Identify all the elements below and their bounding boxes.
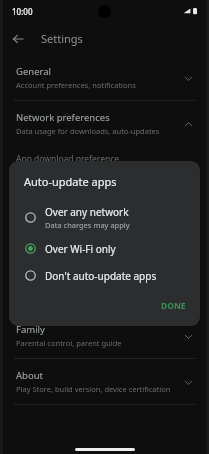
- staticText: Over any network: [45, 205, 129, 219]
- staticText: Network preferences: [16, 111, 110, 124]
- staticText: Settings: [41, 31, 83, 46]
- button[interactable]: General: [3, 55, 206, 100]
- staticText: Don't auto-update apps: [45, 269, 157, 283]
- staticText: About: [16, 369, 43, 382]
- staticText: 10:00: [12, 6, 33, 17]
- button[interactable]: Network preferences: [3, 101, 206, 146]
- button[interactable]: DONE: [147, 295, 200, 317]
- button[interactable]: Back: [3, 24, 33, 54]
- button[interactable]: About: [3, 359, 206, 404]
- button[interactable]: Family: [3, 313, 206, 358]
- staticText: Family: [16, 323, 45, 336]
- staticText: General: [16, 65, 52, 78]
- staticText: Account preferences, notifications: [16, 80, 136, 90]
- staticText: Play Store, build version, device certif…: [16, 384, 171, 394]
- staticText: Over Wi-Fi only: [45, 242, 116, 256]
- staticText: DONE: [161, 300, 186, 312]
- button[interactable]: Over Wi-Fi only: [9, 235, 200, 262]
- staticText: Data charges may apply: [45, 220, 130, 230]
- staticText: App download preference: [16, 153, 120, 165]
- staticText: Data usage for downloads, auto-updates: [16, 126, 160, 136]
- staticText: Parental control, parent guide: [16, 338, 122, 348]
- button[interactable]: Over any network: [9, 200, 200, 235]
- button[interactable]: Don't auto-update apps: [9, 262, 200, 289]
- staticText: Auto-update apps: [24, 174, 117, 189]
